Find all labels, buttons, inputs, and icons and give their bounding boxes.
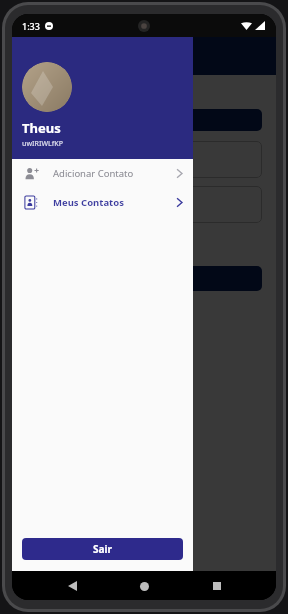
staticText: Theus — [22, 119, 61, 137]
button[interactable] — [26, 186, 262, 223]
staticText: 1:33 — [22, 20, 40, 32]
button[interactable] — [26, 141, 262, 178]
staticText: Sair — [93, 542, 112, 556]
staticText: Meus Contatos — [53, 196, 124, 209]
button[interactable]: Sair — [22, 538, 183, 560]
button[interactable] — [26, 266, 262, 291]
staticText: Adicionar Contato — [53, 167, 134, 180]
button[interactable] — [26, 109, 262, 131]
button[interactable]: Meus Contatos — [12, 188, 193, 217]
button[interactable]: Adicionar Contato — [12, 159, 193, 188]
staticText: uwIRIWLfKP — [22, 139, 63, 149]
button[interactable]: Home — [131, 573, 157, 599]
button[interactable]: Back — [59, 573, 85, 599]
staticText: Cadastro — [26, 84, 73, 99]
button[interactable]: Recent apps — [204, 573, 230, 599]
